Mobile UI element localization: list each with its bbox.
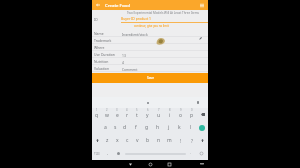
button[interactable]: n: [153, 134, 164, 147]
staticText: !: [180, 138, 182, 144]
staticText: continue, give you no limit: [134, 24, 169, 28]
button[interactable]: Emoji: [113, 147, 124, 160]
button[interactable]: i: [164, 108, 175, 121]
button[interactable]: j: [163, 121, 174, 134]
button[interactable]: Where: [92, 44, 208, 51]
button[interactable]: Save: [92, 73, 208, 83]
staticText: Where: [94, 45, 105, 50]
staticText: ,: [107, 150, 109, 155]
staticText: Use Duration: [94, 52, 115, 57]
staticText: l: [190, 124, 192, 131]
staticText: j: [168, 124, 170, 131]
staticText: ?123: [94, 152, 100, 156]
staticText: c: [126, 137, 129, 144]
staticText: h: [156, 124, 160, 131]
staticText: 9: [180, 108, 182, 112]
staticText: o: [179, 112, 183, 119]
button[interactable]: f: [130, 121, 141, 134]
staticText: y: [146, 112, 149, 119]
staticText: 4: [126, 108, 128, 112]
staticText: v: [136, 137, 139, 144]
staticText: t: [136, 112, 138, 119]
staticText: z: [106, 137, 109, 144]
button[interactable]: Home: [146, 160, 154, 168]
staticText: 1: [96, 108, 98, 112]
staticText: g: [145, 124, 149, 131]
button[interactable]: h: [152, 121, 163, 134]
button[interactable]: b: [142, 134, 153, 147]
button[interactable]: w: [102, 108, 112, 121]
staticText: w: [105, 112, 109, 119]
staticText: ID: [94, 17, 98, 22]
staticText: p: [190, 112, 194, 119]
button[interactable]: g: [141, 121, 152, 134]
button[interactable]: Hide keyboard: [198, 160, 206, 168]
button[interactable]: q: [92, 108, 102, 121]
button[interactable]: Back: [126, 160, 134, 168]
staticText: d: [123, 124, 127, 131]
button[interactable]: More options: [198, 1, 206, 9]
button[interactable]: r: [122, 108, 132, 121]
button[interactable]: z: [102, 134, 112, 147]
button[interactable]: Edit photo: [197, 35, 204, 42]
button[interactable]: d: [120, 121, 130, 134]
staticText: f: [135, 124, 137, 131]
staticText: 13: [122, 53, 126, 57]
button[interactable]: Recent apps: [165, 160, 173, 168]
staticText: 6: [147, 108, 149, 112]
button[interactable]: s: [110, 121, 120, 134]
staticText: e: [116, 112, 119, 119]
button[interactable]: k: [174, 121, 185, 134]
staticText: q: [95, 112, 99, 119]
button[interactable]: ?: [186, 134, 197, 147]
button[interactable]: Space: [124, 147, 187, 160]
button[interactable]: Voice input: [195, 147, 208, 160]
button[interactable]: ?123: [92, 147, 102, 160]
button[interactable]: v: [132, 134, 142, 147]
button[interactable]: ,: [102, 147, 113, 160]
staticText: x: [116, 137, 119, 144]
button[interactable]: x: [112, 134, 122, 147]
staticText: Name: [94, 31, 104, 36]
button[interactable]: Enter: [196, 121, 208, 134]
button[interactable]: Nutrition: [92, 58, 208, 65]
staticText: Save: [147, 76, 154, 80]
button[interactable]: t: [132, 108, 142, 121]
button[interactable]: p: [186, 108, 197, 121]
button[interactable]: Back: [94, 0, 102, 10]
staticText: a: [104, 124, 107, 131]
staticText: ?: [191, 138, 193, 144]
staticText: m: [167, 137, 172, 144]
staticText: 2: [106, 108, 108, 112]
staticText: Valuation: [94, 66, 109, 71]
button[interactable]: l: [185, 121, 196, 134]
staticText: b: [146, 137, 150, 144]
staticText: i: [169, 112, 171, 119]
button[interactable]: u: [153, 108, 164, 121]
button[interactable]: Trademark: [92, 37, 208, 44]
staticText: Ingredient/stock: [122, 32, 148, 36]
button[interactable]: y: [142, 108, 153, 121]
staticText: 5: [136, 108, 138, 112]
button[interactable]: !: [175, 134, 186, 147]
staticText: Create Food: [105, 2, 130, 8]
button[interactable]: e: [112, 108, 122, 121]
staticText: r: [126, 112, 129, 119]
staticText: Buyer ID product 1: [121, 16, 152, 21]
button[interactable]: Backspace: [197, 108, 208, 121]
staticText: Nutrition: [94, 59, 109, 64]
button[interactable]: More suggestions: [197, 101, 199, 104]
staticText: 8: [169, 108, 171, 112]
button[interactable]: m: [164, 134, 175, 147]
button[interactable]: o: [175, 108, 186, 121]
button[interactable]: a: [100, 121, 110, 134]
staticText: 4: [122, 60, 124, 64]
button[interactable]: Use Duration: [92, 51, 208, 58]
button[interactable]: Name: [92, 30, 208, 37]
button[interactable]: Valuation: [92, 65, 208, 72]
staticText: s: [114, 124, 117, 131]
button[interactable]: Shift: [197, 134, 208, 147]
button[interactable]: c: [122, 134, 132, 147]
button[interactable]: Shift: [92, 134, 102, 147]
